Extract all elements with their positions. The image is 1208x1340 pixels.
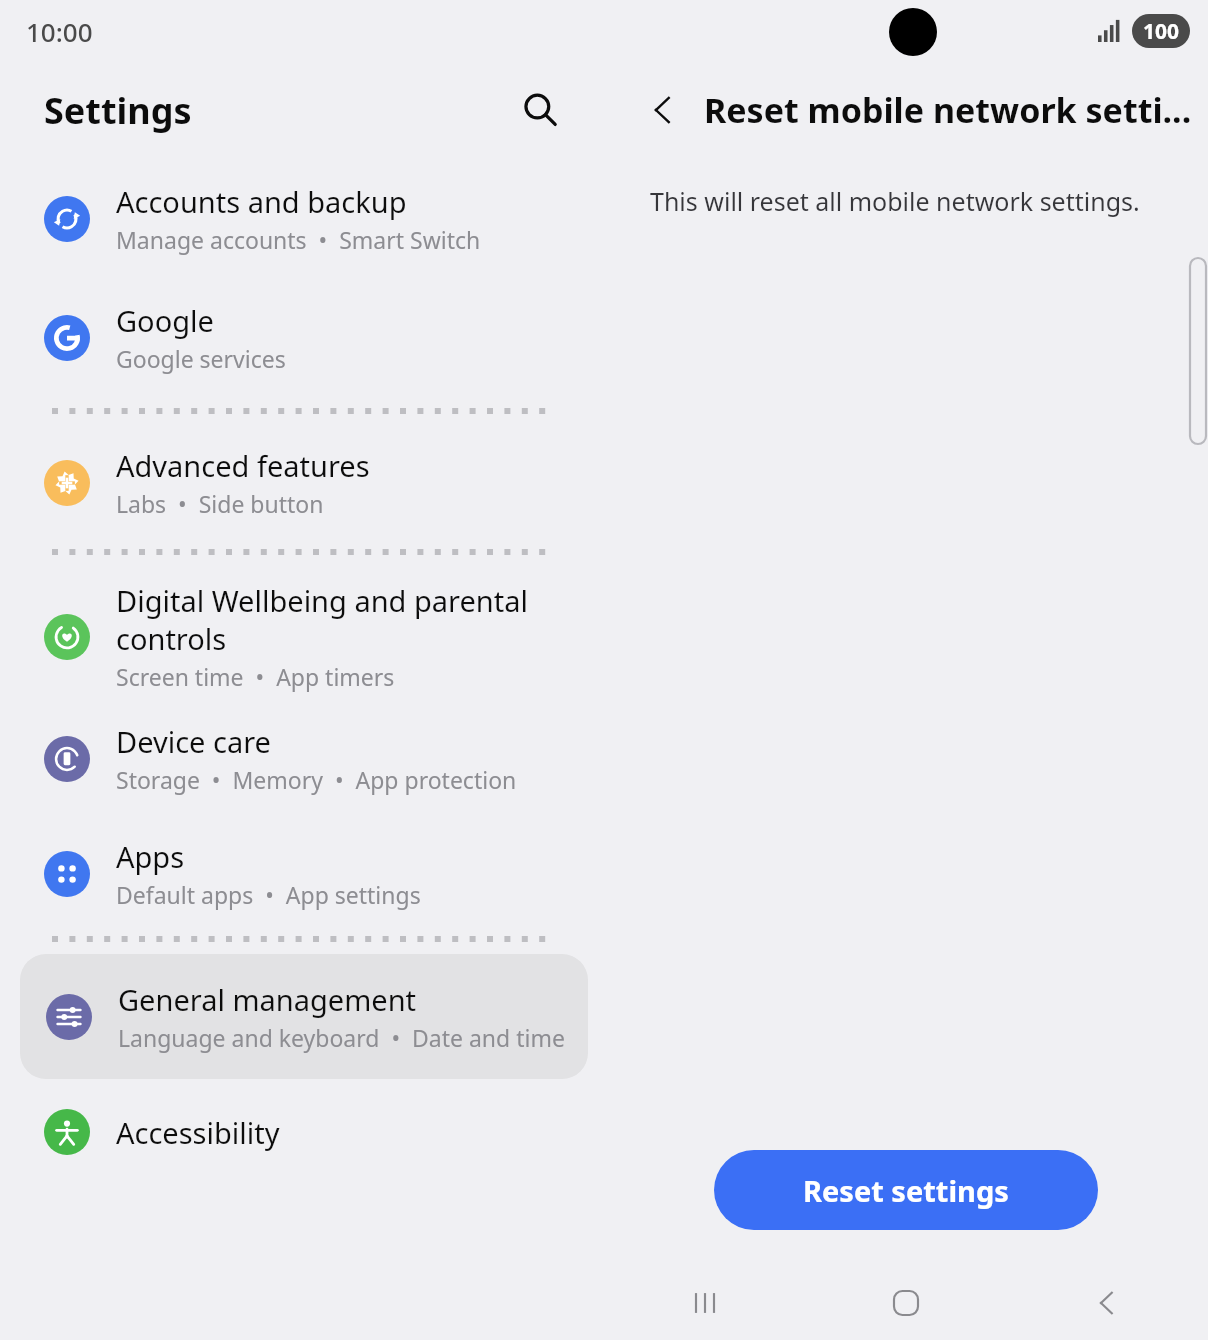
staticText: Accounts and backup bbox=[116, 182, 407, 221]
button[interactable]: General management bbox=[20, 954, 588, 1079]
staticText: Labs • Side button bbox=[116, 488, 324, 519]
button[interactable]: Digital Wellbeing and parental controls bbox=[0, 581, 604, 692]
button[interactable]: Back bbox=[632, 79, 694, 141]
staticText: Default apps • App settings bbox=[116, 879, 421, 910]
staticText: Storage • Memory • App protection bbox=[116, 764, 517, 795]
button[interactable]: Google bbox=[0, 301, 604, 374]
staticText: Settings bbox=[44, 86, 192, 135]
staticText: Digital Wellbeing and parental controls bbox=[116, 581, 528, 658]
staticText: General management bbox=[118, 980, 417, 1019]
button[interactable]: Search bbox=[508, 78, 572, 142]
staticText: 100 bbox=[1143, 17, 1180, 46]
staticText: Reset settings bbox=[803, 1171, 1009, 1210]
button[interactable]: Recents bbox=[604, 1266, 805, 1340]
button[interactable]: Back bbox=[1006, 1266, 1207, 1340]
button[interactable]: Home bbox=[805, 1266, 1006, 1340]
staticText: Google bbox=[116, 301, 214, 340]
staticText: Reset mobile network setti... bbox=[704, 87, 1192, 133]
staticText: Screen time • App timers bbox=[116, 661, 395, 692]
staticText: This will reset all mobile network setti… bbox=[650, 184, 1140, 218]
staticText: Language and keyboard • Date and time bbox=[118, 1022, 565, 1053]
staticText: Apps bbox=[116, 837, 185, 876]
staticText: Accessibility bbox=[116, 1113, 280, 1152]
button[interactable]: Reset settings bbox=[714, 1150, 1098, 1230]
staticText: Device care bbox=[116, 722, 271, 761]
button[interactable]: Apps bbox=[0, 837, 604, 910]
staticText: Manage accounts • Smart Switch bbox=[116, 224, 481, 255]
staticText: 10:00 bbox=[26, 14, 93, 49]
button[interactable]: Device care bbox=[0, 722, 604, 795]
button[interactable]: Advanced features bbox=[0, 446, 604, 519]
staticText: Advanced features bbox=[116, 446, 370, 485]
button[interactable]: Accounts and backup bbox=[0, 182, 604, 255]
button[interactable]: Accessibility bbox=[0, 1109, 604, 1155]
staticText: Google services bbox=[116, 343, 286, 374]
